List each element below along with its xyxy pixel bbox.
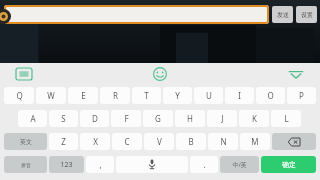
staticText: I bbox=[238, 90, 241, 101]
button[interactable]: X bbox=[80, 133, 110, 150]
button[interactable]: O bbox=[256, 87, 285, 104]
staticText: O bbox=[267, 90, 274, 101]
button[interactable]: 拼音 bbox=[4, 156, 47, 173]
staticText: D bbox=[92, 113, 98, 124]
staticText: J bbox=[221, 113, 224, 124]
button[interactable]: V bbox=[144, 133, 174, 150]
staticText: . bbox=[203, 159, 206, 170]
staticText: M bbox=[251, 136, 259, 147]
button[interactable]: 中/英 bbox=[220, 156, 259, 173]
staticText: 确定 bbox=[282, 160, 296, 169]
button[interactable]: C bbox=[112, 133, 142, 150]
staticText: V bbox=[157, 136, 162, 147]
button[interactable]: P bbox=[287, 87, 316, 104]
button[interactable]: L bbox=[271, 110, 301, 127]
button[interactable]: D bbox=[80, 110, 109, 127]
button[interactable]: Q bbox=[4, 87, 34, 104]
button[interactable]: U bbox=[194, 87, 223, 104]
button[interactable]: A bbox=[18, 110, 47, 127]
button[interactable]: 英文 bbox=[4, 133, 47, 150]
button[interactable]: 确定 bbox=[261, 156, 316, 173]
button[interactable]: 123 bbox=[49, 156, 84, 173]
staticText: S bbox=[61, 113, 66, 124]
staticText: 拼音 bbox=[21, 162, 31, 168]
button[interactable]: B bbox=[176, 133, 206, 150]
button[interactable]: Keyboard layout bbox=[16, 68, 32, 80]
button[interactable] bbox=[4, 5, 269, 24]
staticText: H bbox=[187, 113, 193, 124]
staticText: T bbox=[144, 90, 149, 101]
button[interactable]: R bbox=[100, 87, 130, 104]
staticText: 中/英 bbox=[232, 161, 247, 169]
button[interactable]: Backspace bbox=[272, 133, 316, 150]
button[interactable]: T bbox=[132, 87, 161, 104]
staticText: B bbox=[188, 136, 194, 147]
staticText: 设置 bbox=[301, 11, 313, 19]
staticText: Z bbox=[61, 136, 66, 147]
staticText: P bbox=[299, 90, 304, 101]
staticText: U bbox=[206, 90, 212, 101]
button[interactable]: M bbox=[240, 133, 270, 150]
staticText: K bbox=[252, 113, 257, 124]
button[interactable]: J bbox=[207, 110, 237, 127]
button[interactable]: K bbox=[239, 110, 269, 127]
staticText: , bbox=[99, 159, 102, 170]
button[interactable]: Y bbox=[163, 87, 192, 104]
staticText: N bbox=[220, 136, 227, 147]
button[interactable]: E bbox=[68, 87, 98, 104]
staticText: A bbox=[30, 113, 36, 124]
staticText: W bbox=[47, 90, 55, 101]
button[interactable]: F bbox=[111, 110, 141, 127]
staticText: 发送 bbox=[277, 11, 289, 19]
button[interactable]: Emoji bbox=[153, 67, 167, 81]
button[interactable]: Hide keyboard bbox=[288, 68, 304, 80]
button[interactable]: Space bbox=[116, 156, 188, 173]
button[interactable]: 发送 bbox=[272, 6, 293, 23]
button[interactable]: G bbox=[143, 110, 173, 127]
button[interactable]: I bbox=[225, 87, 254, 104]
staticText: X bbox=[93, 136, 98, 147]
staticText: Y bbox=[175, 90, 180, 101]
button[interactable]: H bbox=[175, 110, 205, 127]
staticText: C bbox=[124, 136, 130, 147]
button[interactable]: N bbox=[208, 133, 238, 150]
button[interactable]: , bbox=[86, 156, 114, 173]
staticText: 英文 bbox=[20, 138, 32, 146]
staticText: E bbox=[81, 90, 86, 101]
button[interactable]: W bbox=[36, 87, 66, 104]
button[interactable]: . bbox=[190, 156, 218, 173]
button[interactable]: S bbox=[49, 110, 78, 127]
button[interactable]: 设置 bbox=[296, 6, 317, 23]
staticText: G bbox=[155, 113, 161, 124]
staticText: 123 bbox=[60, 160, 73, 170]
staticText: R bbox=[113, 90, 118, 101]
staticText: L bbox=[284, 113, 289, 124]
button[interactable]: Z bbox=[49, 133, 78, 150]
button[interactable]: Avatar bbox=[0, 9, 11, 24]
staticText: Q bbox=[16, 90, 23, 101]
staticText: F bbox=[124, 113, 129, 124]
